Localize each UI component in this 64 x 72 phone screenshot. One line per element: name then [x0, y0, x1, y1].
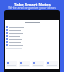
button[interactable] [5, 38, 59, 40]
button[interactable]: Shortcut 3 [46, 61, 58, 67]
staticText: Take Smart Notes [14, 2, 51, 8]
button[interactable] [5, 29, 59, 31]
button[interactable] [5, 44, 59, 46]
button[interactable] [5, 32, 59, 34]
button[interactable] [5, 35, 59, 37]
button[interactable]: Shortcut 2 [32, 61, 44, 67]
button[interactable] [5, 26, 59, 28]
staticText: Write and organize your ideas [8, 5, 56, 10]
button[interactable]: Shortcut 0 [6, 61, 17, 67]
button[interactable] [5, 41, 59, 43]
button[interactable]: Shortcut 1 [19, 61, 30, 67]
